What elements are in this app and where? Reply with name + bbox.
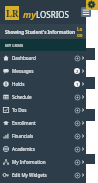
staticText: My Information <box>12 159 46 165</box>
staticText: Dashboard <box>12 55 36 61</box>
button[interactable]: Messages <box>0 64 86 77</box>
staticText: Holds <box>12 81 25 87</box>
button[interactable]: Dashboard <box>0 51 86 64</box>
staticText: Logout <box>77 26 84 37</box>
staticText: 1 <box>76 82 79 87</box>
button[interactable]: Academics <box>0 142 86 155</box>
staticText: Showing Student's Information <box>5 29 75 35</box>
button[interactable]: To Dos <box>0 103 86 116</box>
staticText: LOSRIOS <box>36 9 69 20</box>
staticText: MY LRMS <box>5 43 24 48</box>
staticText: Edit My Widgets <box>12 172 47 178</box>
staticText: Enrollment <box>12 120 36 126</box>
staticText: 2 <box>76 69 79 74</box>
staticText: Academics <box>12 146 36 152</box>
staticText: To Dos <box>12 107 27 113</box>
button[interactable]: Holds <box>0 77 86 90</box>
button[interactable]: Edit My Widgets <box>0 168 86 181</box>
button[interactable]: Schedule <box>0 90 86 103</box>
button[interactable]: Enrollment <box>0 116 86 129</box>
button[interactable]: Menu <box>81 7 91 17</box>
staticText: Messages <box>12 68 34 74</box>
staticText: Financials <box>12 133 34 139</box>
staticText: LR <box>6 7 19 19</box>
button[interactable]: Logout <box>75 24 86 39</box>
staticText: Schedule <box>12 94 32 100</box>
staticText: my <box>23 8 36 20</box>
button[interactable]: Financials <box>0 129 86 142</box>
button[interactable]: Settings <box>86 0 98 10</box>
button[interactable]: My Information <box>0 155 86 168</box>
